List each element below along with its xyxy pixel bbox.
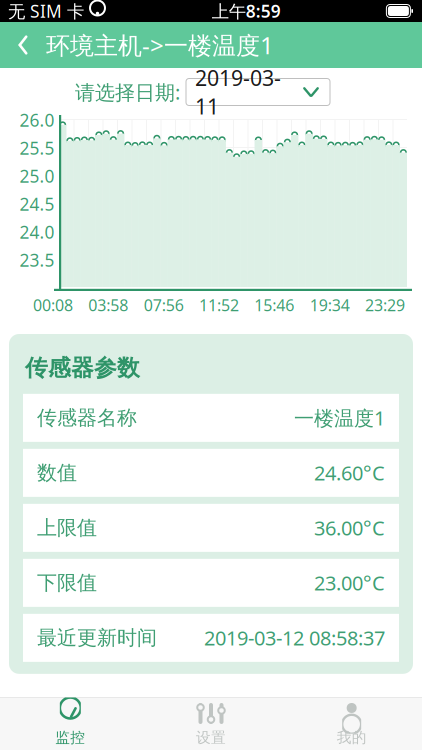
- staticText: 上限值: [37, 516, 97, 540]
- staticText: 下限值: [37, 571, 97, 595]
- staticText: 26.0: [19, 108, 54, 131]
- button[interactable]: 2019-03-11: [186, 78, 330, 105]
- staticText: 11:52: [199, 294, 239, 316]
- staticText: 19:34: [310, 294, 350, 316]
- staticText: 上午8:59: [212, 0, 281, 22]
- staticText: 24.0: [19, 220, 54, 243]
- staticText: 请选择日期:: [75, 79, 180, 105]
- button[interactable]: 设置: [141, 698, 281, 750]
- staticText: 07:56: [144, 294, 184, 316]
- staticText: 03:58: [88, 294, 128, 316]
- staticText: 监控: [55, 728, 85, 746]
- staticText: 数值: [37, 461, 77, 485]
- staticText: 24.5: [19, 192, 54, 215]
- staticText: 23:29: [365, 294, 405, 316]
- staticText: 25.0: [19, 164, 54, 187]
- staticText: 00:08: [33, 294, 73, 316]
- staticText: 设置: [196, 728, 226, 746]
- button[interactable]: 监控: [0, 698, 141, 750]
- button[interactable]: 我的: [281, 698, 422, 750]
- staticText: 2019-03-12 08:58:37: [204, 625, 385, 651]
- staticText: 环境主机->一楼温度1: [46, 29, 274, 61]
- staticText: 无 SIM 卡: [8, 0, 84, 22]
- staticText: 传感器参数: [25, 354, 140, 382]
- staticText: 最近更新时间: [37, 626, 157, 650]
- staticText: 23.00°C: [314, 570, 385, 596]
- staticText: 15:46: [254, 294, 294, 316]
- button[interactable]: 返回: [0, 22, 46, 68]
- staticText: 36.00°C: [314, 515, 385, 541]
- staticText: 25.5: [19, 136, 54, 159]
- staticText: 2019-03-11: [195, 64, 281, 120]
- staticText: 我的: [337, 728, 367, 746]
- staticText: 23.5: [19, 248, 54, 271]
- staticText: 24.60°C: [314, 460, 385, 486]
- staticText: 传感器名称: [37, 406, 137, 430]
- staticText: 一楼温度1: [294, 405, 385, 431]
